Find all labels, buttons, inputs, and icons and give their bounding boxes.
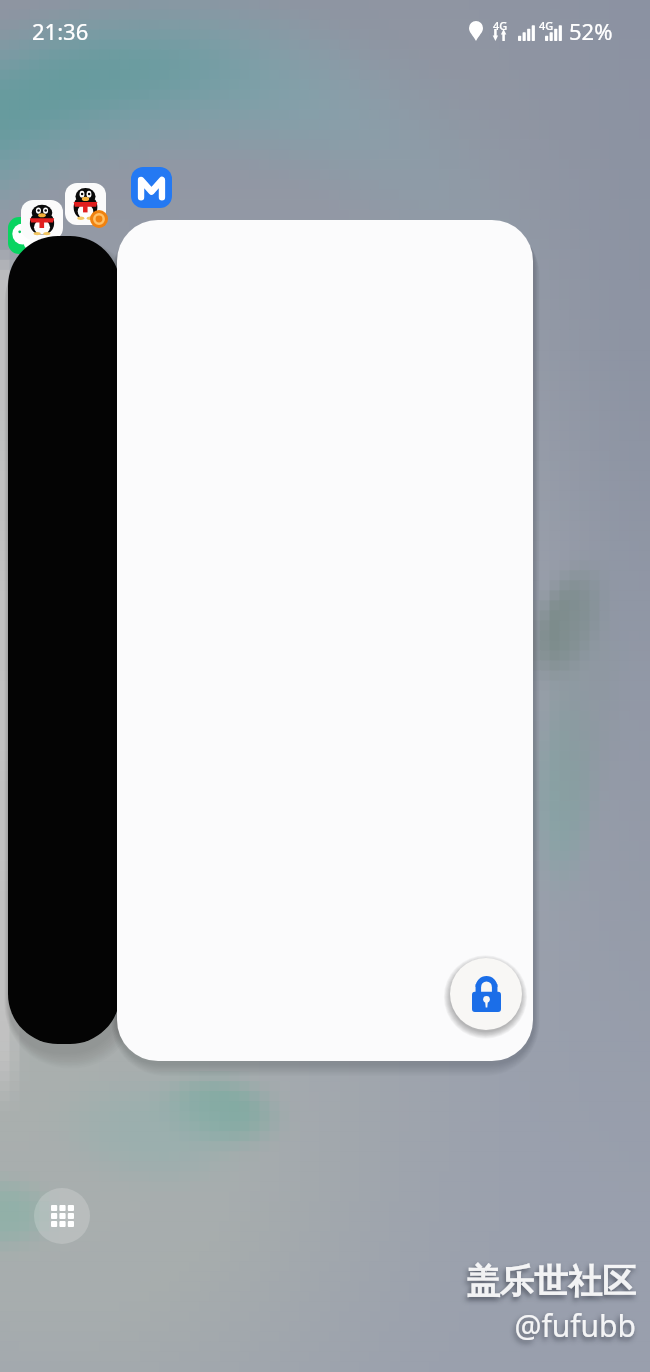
button[interactable]: Recent app	[117, 220, 533, 1061]
staticText: 4G	[539, 18, 554, 33]
button[interactable]: Recent app	[8, 236, 120, 1044]
button[interactable]: WeChat	[8, 217, 47, 254]
other: Location	[469, 21, 483, 41]
staticText: 21:36	[32, 16, 89, 46]
staticText: 4G	[493, 18, 508, 33]
staticText: 52%	[569, 16, 613, 46]
button[interactable]: App M	[131, 167, 172, 208]
button[interactable]: QQ Music	[65, 183, 106, 225]
staticText: @fufubb	[514, 1305, 636, 1346]
other: Signal	[518, 22, 536, 41]
button[interactable]: Lock app	[450, 958, 522, 1030]
button[interactable]: App drawer	[34, 1188, 90, 1244]
staticText: 盖乐世社区	[466, 1260, 636, 1303]
button[interactable]: QQ	[21, 200, 63, 240]
